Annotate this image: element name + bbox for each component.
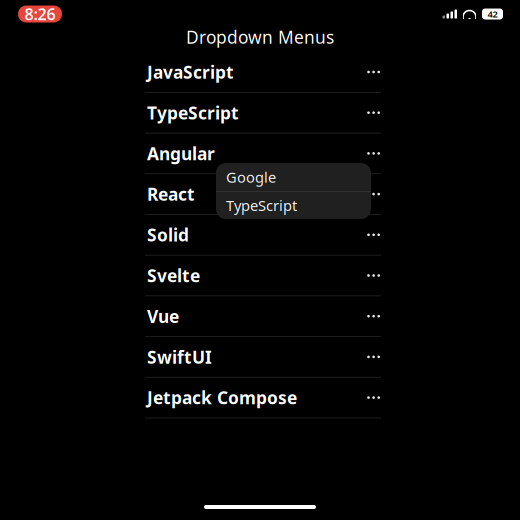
staticText: SwiftUI	[147, 345, 212, 368]
staticText: 8:26	[24, 3, 55, 25]
button[interactable]: Angular	[0, 133, 520, 173]
button[interactable]: SwiftUI	[0, 337, 520, 377]
button[interactable]: Jetpack Compose	[0, 378, 520, 418]
staticText: 42	[487, 8, 497, 20]
staticText: TypeScript	[147, 101, 239, 124]
button[interactable]: TypeScript	[216, 192, 371, 219]
staticText: Solid	[147, 223, 189, 246]
button[interactable]: TypeScript	[0, 93, 520, 133]
button[interactable]: Google	[216, 163, 371, 191]
button[interactable]: Vue	[0, 296, 520, 336]
staticText: TypeScript	[226, 196, 297, 215]
button[interactable]: Solid	[0, 215, 520, 255]
staticText: Jetpack Compose	[147, 386, 297, 409]
button[interactable]: React	[0, 174, 520, 214]
staticText: Angular	[147, 142, 215, 165]
button[interactable]: JavaScript	[0, 52, 520, 92]
staticText: Svelte	[147, 264, 200, 287]
staticText: Dropdown Menus	[186, 25, 334, 48]
staticText: React	[147, 183, 195, 206]
button[interactable]: Svelte	[0, 255, 520, 295]
staticText: Vue	[147, 305, 179, 328]
staticText: Google	[226, 167, 276, 187]
staticText: JavaScript	[147, 60, 234, 83]
